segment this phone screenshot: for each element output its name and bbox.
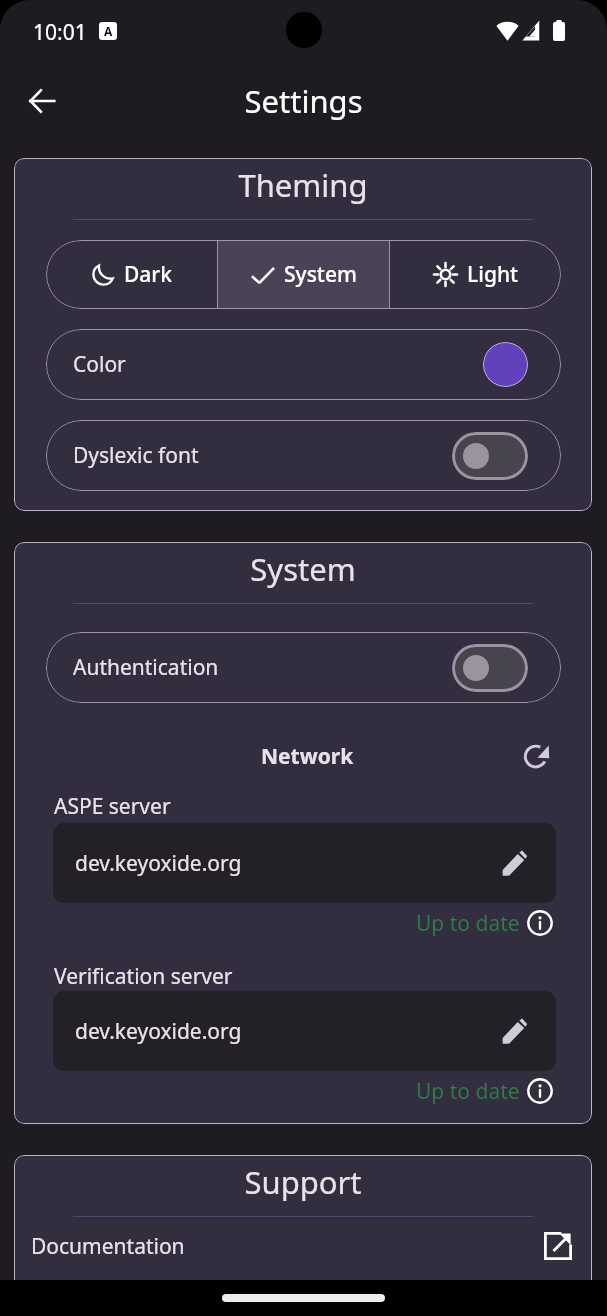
staticText: Dyslexic font xyxy=(73,441,199,470)
staticText: Up to date xyxy=(416,909,520,938)
button[interactable]: Authentication xyxy=(46,632,561,703)
button[interactable]: Back xyxy=(18,77,66,125)
staticText: Up to date xyxy=(416,1077,520,1106)
button[interactable]: Color xyxy=(46,329,561,400)
button[interactable]: Light xyxy=(390,240,561,309)
staticText: Color xyxy=(73,350,126,379)
button[interactable]: Dark xyxy=(46,240,217,309)
button[interactable]: System xyxy=(218,240,389,309)
staticText: Network xyxy=(261,742,354,771)
staticText: Theming xyxy=(14,164,592,206)
button[interactable]: Dyslexic font xyxy=(46,420,561,491)
staticText: Support xyxy=(14,1161,592,1203)
staticText: A xyxy=(104,23,113,39)
staticText: dev.keyoxide.org xyxy=(75,849,242,878)
staticText: Documentation xyxy=(31,1232,185,1261)
staticText: dev.keyoxide.org xyxy=(75,1017,242,1046)
staticText: 10:01 xyxy=(33,18,87,47)
staticText: System xyxy=(284,260,357,289)
button[interactable]: dev.keyoxide.org xyxy=(53,991,556,1071)
staticText: ASPE server xyxy=(54,792,171,821)
staticText: System xyxy=(14,548,592,590)
staticText: Light xyxy=(467,260,519,289)
button[interactable]: dev.keyoxide.org xyxy=(53,823,556,903)
staticText: Dark xyxy=(124,260,172,289)
button[interactable]: Refresh xyxy=(519,738,555,774)
staticText: Verification server xyxy=(54,962,233,991)
button[interactable]: Documentation xyxy=(14,1226,592,1266)
staticText: Settings xyxy=(0,80,607,122)
staticText: Authentication xyxy=(73,653,219,682)
